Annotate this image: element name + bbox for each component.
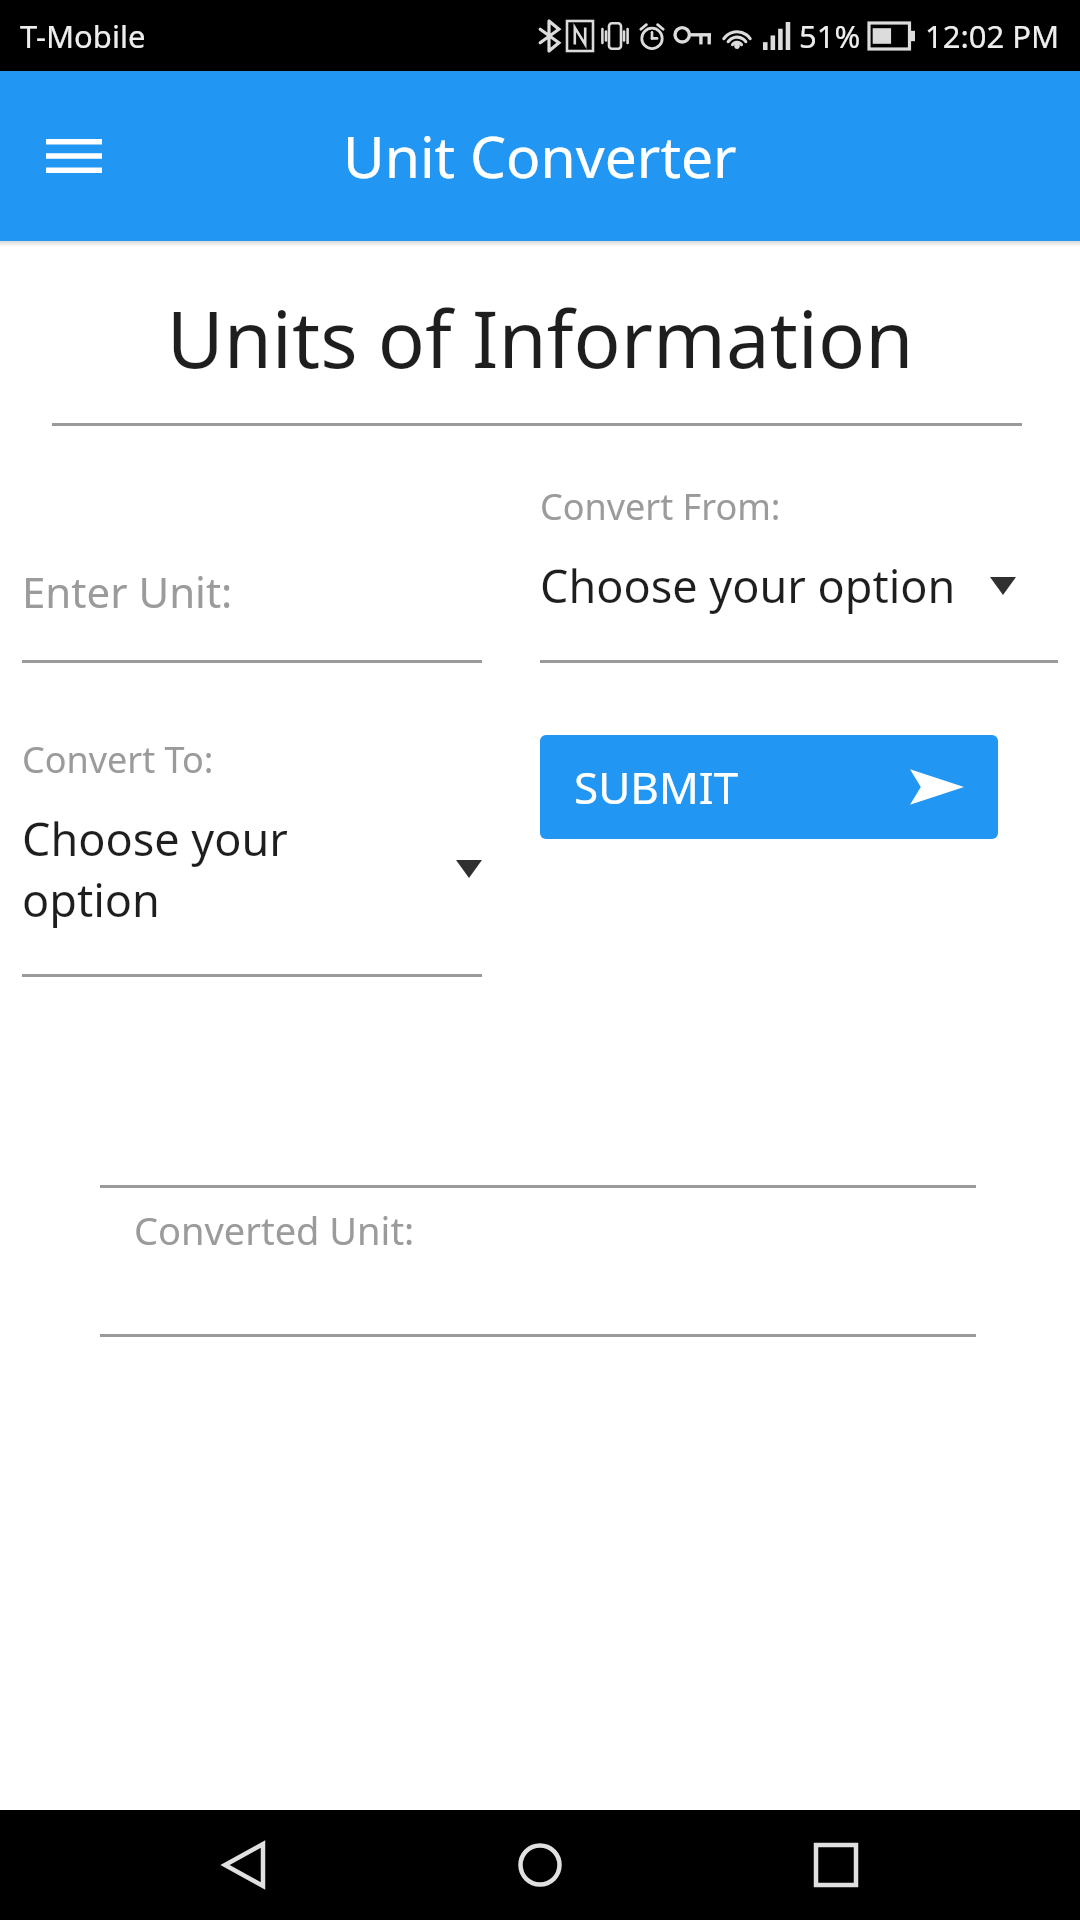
button[interactable]: Back xyxy=(192,1813,296,1917)
button[interactable]: Home xyxy=(488,1813,592,1917)
button[interactable]: SUBMIT xyxy=(540,735,998,839)
staticText: Convert From: xyxy=(540,482,781,531)
staticText: Units of Information xyxy=(0,285,1080,391)
staticText: Enter Unit: xyxy=(22,563,233,620)
button[interactable]: Open navigation menu xyxy=(38,120,110,192)
staticText: Convert To: xyxy=(22,735,214,784)
staticText: Converted Unit: xyxy=(134,1204,415,1256)
staticText: 51% xyxy=(799,15,861,57)
staticText: Unit Converter xyxy=(343,117,737,195)
staticText: Choose your option xyxy=(540,555,956,616)
button[interactable]: Choose your option xyxy=(22,808,482,977)
staticText: 12:02 PM xyxy=(925,15,1060,57)
staticText: T-Mobile xyxy=(20,15,146,57)
button[interactable]: Choose your option xyxy=(540,555,1058,663)
staticText: Choose your option xyxy=(22,808,422,930)
staticText: SUBMIT xyxy=(574,757,739,817)
button[interactable]: Recent apps xyxy=(784,1813,888,1917)
